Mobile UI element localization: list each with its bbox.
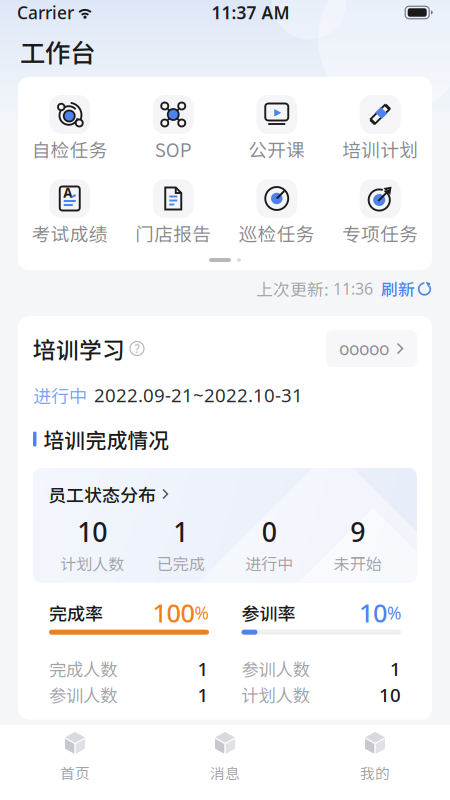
- button[interactable]: 刷新: [381, 276, 432, 300]
- staticText: 未开始: [334, 551, 382, 575]
- staticText: 10: [379, 682, 401, 707]
- staticText: 参训率: [241, 600, 295, 626]
- button[interactable]: 巡检任务: [225, 179, 328, 242]
- staticText: 10: [77, 514, 107, 549]
- staticText: 消息: [210, 762, 240, 783]
- staticText: 参训人数: [49, 682, 117, 707]
- staticText: 刷新: [381, 276, 415, 300]
- button[interactable]: 员工状态分布: [48, 481, 402, 507]
- staticText: 培训完成情况: [43, 424, 169, 454]
- staticText: 已完成: [157, 551, 205, 575]
- button[interactable]: 培训计划: [328, 95, 432, 158]
- button[interactable]: 自检任务: [18, 95, 121, 158]
- staticText: 参训人数: [241, 656, 309, 681]
- button[interactable]: 消息: [150, 729, 300, 797]
- staticText: 门店报告: [135, 219, 211, 246]
- staticText: 我的: [360, 762, 390, 783]
- staticText: ooooo: [339, 337, 389, 360]
- staticText: 进行中: [33, 382, 87, 408]
- button[interactable]: 公开课: [225, 95, 328, 158]
- staticText: 专项任务: [342, 219, 418, 246]
- staticText: 自检任务: [32, 135, 108, 162]
- staticText: 1: [390, 656, 401, 681]
- staticText: 11:36: [329, 278, 381, 299]
- staticText: 上次更新:: [256, 276, 329, 300]
- staticText: ?: [134, 340, 139, 356]
- staticText: 培训计划: [342, 135, 418, 162]
- button[interactable]: ooooo: [326, 330, 417, 367]
- staticText: 首页: [60, 762, 90, 783]
- staticText: 公开课: [248, 135, 305, 162]
- staticText: 完成率: [49, 600, 103, 626]
- staticText: 1: [173, 514, 188, 549]
- staticText: 100: [152, 596, 194, 629]
- staticText: 巡检任务: [239, 219, 315, 246]
- staticText: 工作台: [20, 33, 95, 70]
- button[interactable]: 门店报告: [121, 179, 225, 242]
- staticText: 考试成绩: [32, 219, 108, 246]
- staticText: %: [387, 601, 401, 624]
- staticText: 进行中: [245, 551, 293, 575]
- staticText: 计划人数: [60, 551, 124, 575]
- staticText: 1: [197, 656, 208, 681]
- staticText: 员工状态分布: [48, 481, 156, 507]
- staticText: 计划人数: [241, 682, 309, 707]
- button[interactable]: SOP: [121, 95, 225, 158]
- staticText: 11:37 AM: [211, 1, 289, 24]
- staticText: 1: [197, 682, 208, 707]
- button[interactable]: 首页: [0, 729, 150, 797]
- staticText: 2022.09-21~2022.10-31: [94, 383, 303, 407]
- staticText: 完成人数: [49, 656, 117, 681]
- staticText: %: [194, 601, 208, 624]
- staticText: A: [63, 184, 72, 201]
- staticText: Carrier: [17, 1, 74, 24]
- staticText: 0: [262, 514, 277, 549]
- button[interactable]: 我的: [300, 729, 450, 797]
- button[interactable]: 专项任务: [328, 179, 432, 242]
- staticText: SOP: [155, 135, 192, 162]
- staticText: 10: [359, 596, 387, 629]
- staticText: 9: [350, 514, 365, 549]
- button[interactable]: A: [18, 179, 121, 242]
- staticText: 培训学习: [33, 332, 125, 365]
